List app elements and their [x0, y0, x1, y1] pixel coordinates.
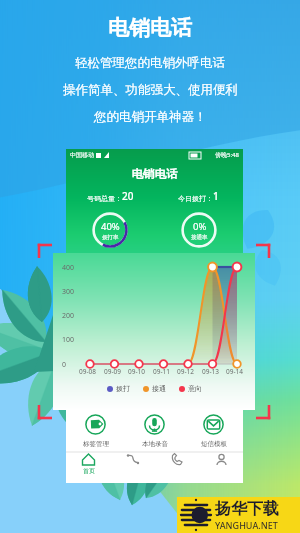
staticText: YANGHUA.NET: [215, 519, 278, 531]
staticText: 400: [62, 263, 75, 273]
staticText: 100: [62, 335, 75, 345]
staticText: 09-12: [177, 367, 194, 376]
staticText: 今日拨打：: [178, 194, 213, 203]
button[interactable]: 我的: [199, 453, 243, 466]
staticText: 电销电话: [108, 15, 192, 41]
staticText: 电销电话: [66, 167, 243, 181]
staticText: 0: [62, 360, 67, 370]
button[interactable]: 拨号: [155, 453, 199, 466]
staticText: 200: [62, 311, 75, 321]
staticText: 中国移动: [70, 151, 94, 159]
staticText: 0%: [193, 220, 207, 233]
staticText: 拨打: [116, 384, 130, 393]
staticText: 您的电销开单神器！: [94, 109, 207, 125]
staticText: 09-14: [226, 367, 243, 376]
staticText: 40%: [101, 220, 120, 233]
staticText: 首页: [83, 467, 95, 475]
staticText: 标签管理: [83, 440, 109, 448]
staticText: 扬华下载: [215, 499, 279, 519]
staticText: 300: [62, 287, 75, 297]
staticText: 接通: [152, 384, 166, 393]
staticText: 傍晚5:48: [215, 151, 239, 159]
staticText: 操作简单、功能强大、使用便利: [63, 82, 238, 98]
staticText: 09-08: [79, 367, 96, 376]
staticText: 拨打率: [102, 234, 119, 241]
staticText: 接通率: [191, 234, 208, 241]
button[interactable]: 首页: [66, 453, 111, 475]
staticText: 1: [213, 189, 219, 203]
staticText: 短信模板: [201, 440, 227, 448]
staticText: 本地录音: [142, 440, 168, 448]
button[interactable]: 短信模板: [184, 414, 243, 448]
staticText: 轻松管理您的电销外呼电话: [75, 55, 225, 71]
button[interactable]: 通话记录: [111, 453, 155, 466]
staticText: 20: [122, 189, 134, 203]
staticText: 09-13: [202, 367, 219, 376]
staticText: 09-11: [153, 367, 170, 376]
staticText: 09-09: [104, 367, 121, 376]
staticText: 号码总量：: [87, 194, 122, 203]
button[interactable]: 本地录音: [125, 414, 184, 448]
staticText: 意向: [188, 384, 202, 393]
button[interactable]: 标签管理: [66, 414, 125, 448]
staticText: 09-10: [128, 367, 145, 376]
